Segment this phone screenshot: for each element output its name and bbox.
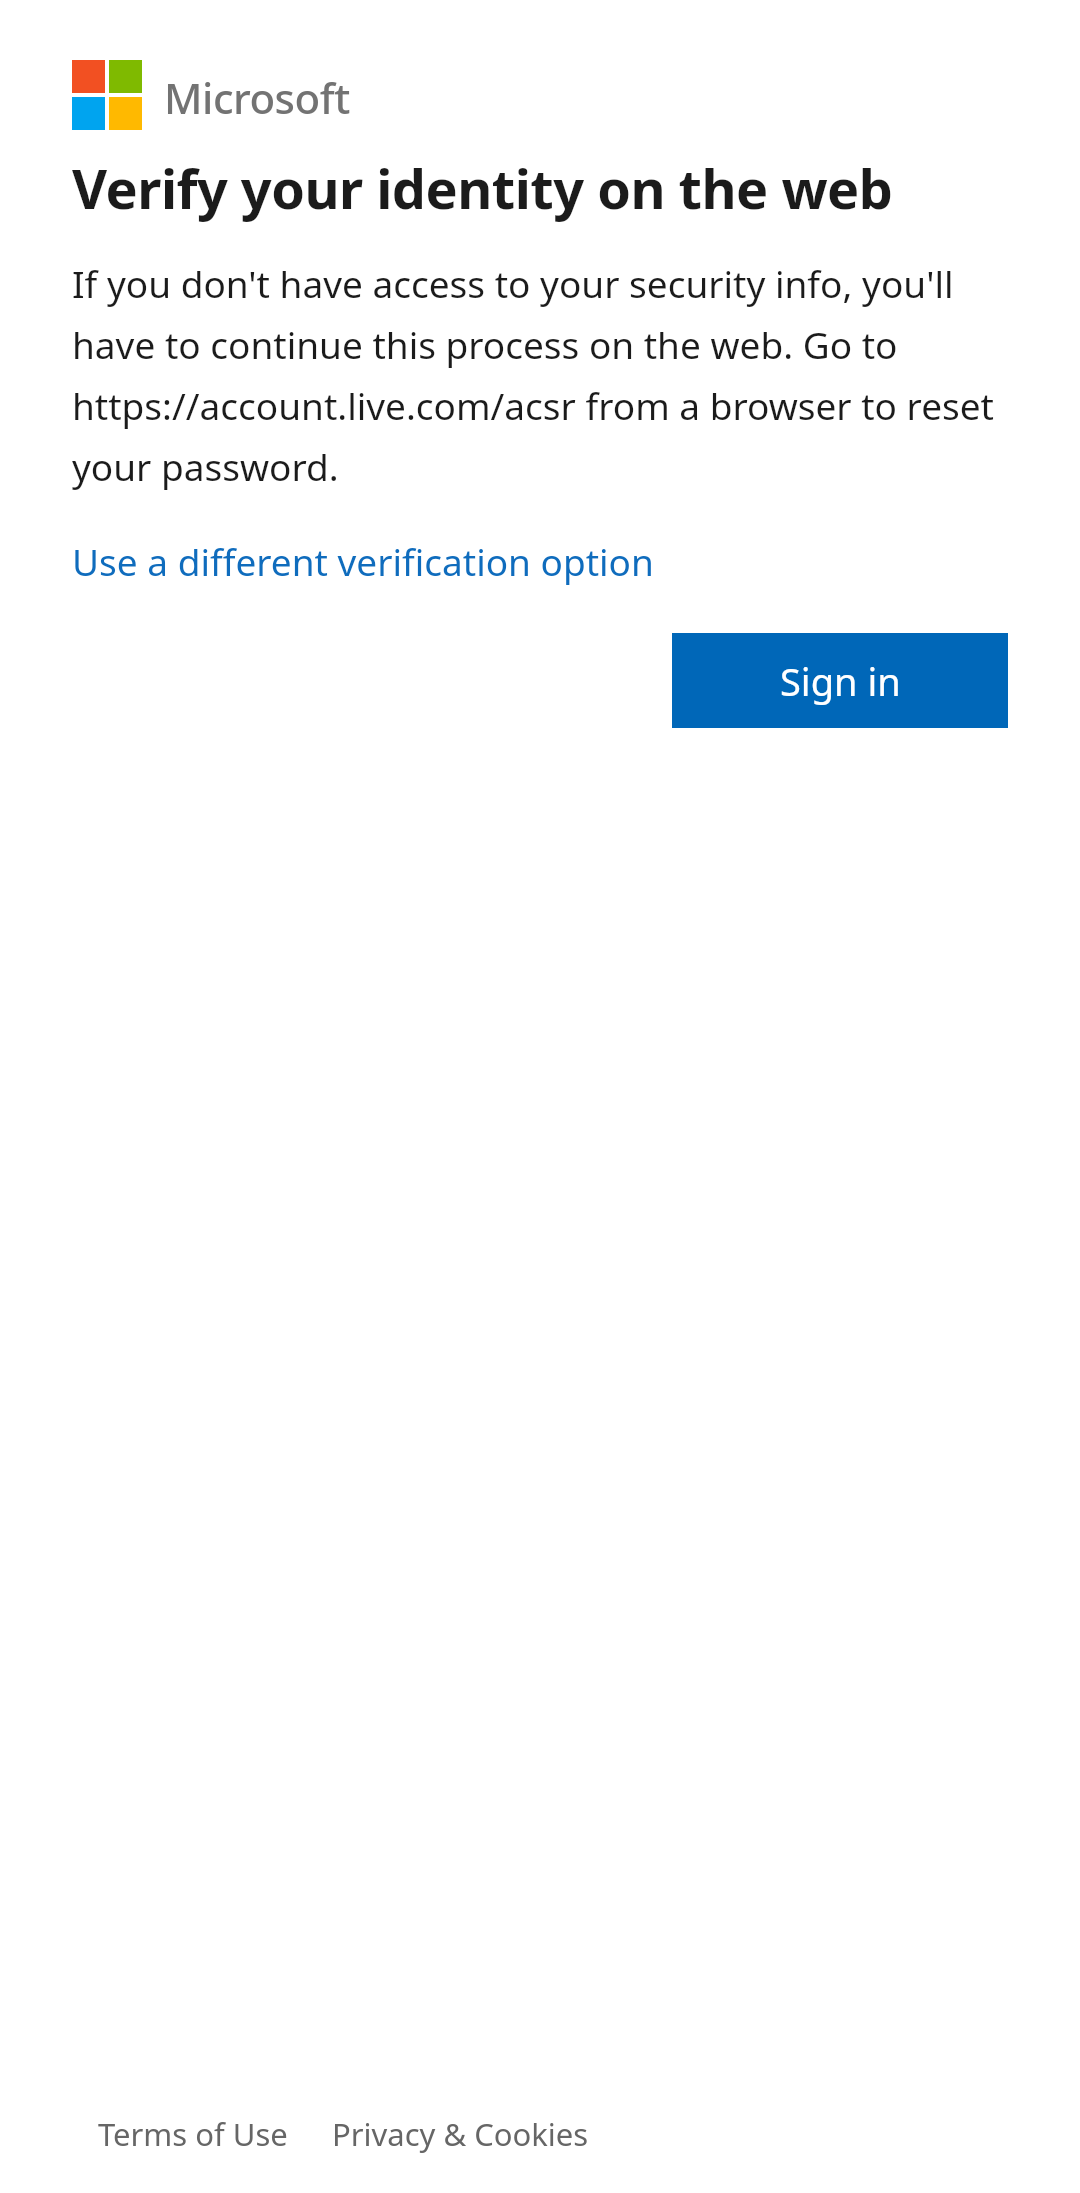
button[interactable]: Sign in <box>672 633 1008 728</box>
other: Microsoft <box>72 60 142 130</box>
button[interactable]: Privacy & Cookies <box>332 2113 589 2155</box>
staticText: Sign in <box>780 655 901 707</box>
staticText: If you don't have access to your securit… <box>72 250 1008 494</box>
staticText: Microsoft <box>164 69 350 126</box>
button[interactable]: Use a different verification option <box>72 536 654 586</box>
button[interactable]: Terms of Use <box>98 2113 288 2155</box>
staticText: Use a different verification option <box>72 536 654 586</box>
staticText: Terms of Use <box>98 2113 288 2155</box>
staticText: Privacy & Cookies <box>332 2113 589 2155</box>
staticText: Verify your identity on the web <box>72 160 1008 222</box>
